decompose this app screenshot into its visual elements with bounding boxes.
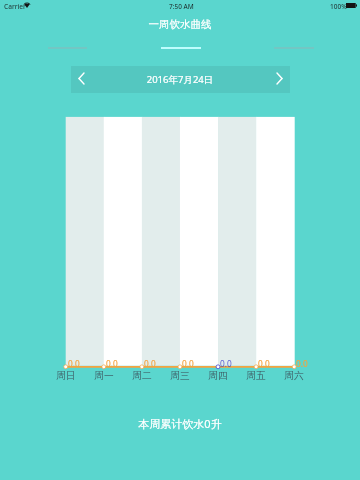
staticText: 本周累计饮水0升 [0,416,360,431]
button[interactable]: 周四 [199,369,237,383]
staticText: 一周饮水曲线 [0,18,360,31]
staticText: 周五 [237,370,275,382]
staticText: 0.0 [258,358,270,369]
button[interactable]: Previous week [71,66,105,93]
button[interactable]: Next week [256,66,290,93]
button[interactable]: 周六 [275,369,313,383]
button[interactable]: Month chart [268,40,320,56]
staticText: 周一 [85,370,123,382]
staticText: 7:50 AM [169,2,194,11]
button[interactable]: 周三 [161,369,199,383]
staticText: 周日 [47,370,85,382]
staticText: 0.0 [106,358,118,369]
staticText: 0.0 [68,358,80,369]
staticText: 周二 [123,370,161,382]
staticText: 2016年7月24日 [0,73,360,86]
staticText: 0.0 [296,358,308,369]
button[interactable]: 周五 [237,369,275,383]
button[interactable] [71,66,290,93]
staticText: 0.0 [220,358,232,369]
staticText: 周三 [161,370,199,382]
button[interactable]: Week chart [155,40,207,56]
staticText: 周六 [275,370,313,382]
staticText: 0.0 [144,358,156,369]
staticText: 100% [330,2,347,11]
button[interactable]: 周二 [123,369,161,383]
button[interactable]: 周一 [85,369,123,383]
button[interactable]: 周日 [47,369,85,383]
staticText: Carrier [4,2,26,11]
button[interactable]: Day chart [42,40,93,56]
staticText: 周四 [199,370,237,382]
staticText: 0.0 [182,358,194,369]
